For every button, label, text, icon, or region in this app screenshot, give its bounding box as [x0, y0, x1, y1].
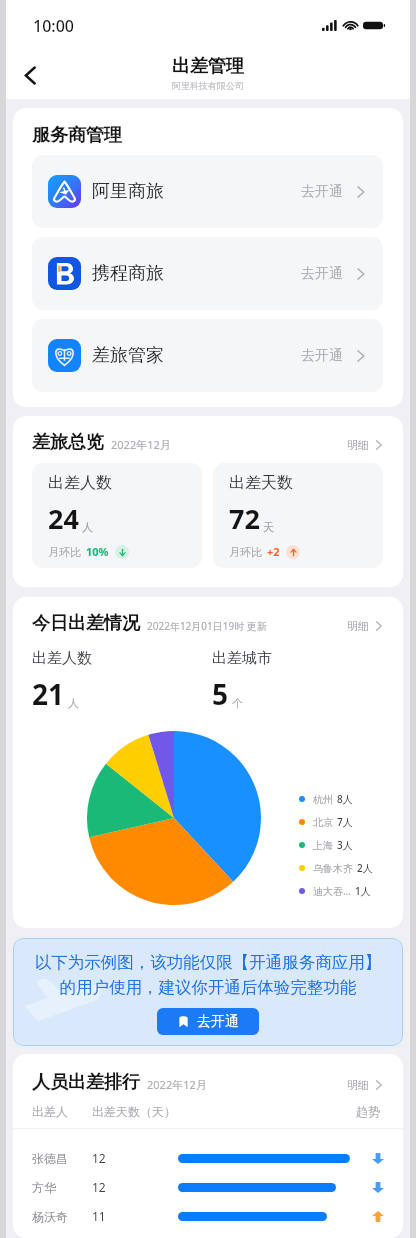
staticText: 2022年12月 — [111, 437, 171, 452]
staticText: 今日出差情况 — [32, 612, 140, 635]
staticText: 明细 — [347, 619, 369, 633]
staticText: 北京 — [313, 816, 333, 829]
staticText: 去开通 — [301, 183, 343, 201]
staticText: 阿里商旅 — [92, 180, 164, 203]
staticText: 去开通 — [197, 1013, 239, 1031]
staticText: 迪大吞… — [313, 884, 351, 898]
button[interactable]: 差旅管家 — [32, 319, 383, 392]
button[interactable]: 携程商旅 — [32, 237, 383, 310]
staticText: 张德昌 — [32, 1151, 92, 1166]
staticText: 12 — [92, 1179, 178, 1195]
staticText: 7人 — [337, 815, 353, 829]
staticText: 以下为示例图，该功能仅限【开通服务商应用】 — [13, 952, 403, 973]
staticText: 去开通 — [301, 347, 343, 365]
staticText: 杭州 — [313, 793, 333, 806]
staticText: 21 — [32, 675, 65, 713]
staticText: 人 — [82, 520, 93, 534]
staticText: 2人 — [357, 861, 373, 875]
button[interactable]: 阿里商旅 — [32, 155, 383, 228]
button[interactable]: 出差天数 — [213, 463, 383, 568]
staticText: 趋势 — [356, 1104, 380, 1119]
staticText: 2022年12月01日19时 更新 — [147, 619, 267, 633]
button[interactable]: 去开通 — [157, 1008, 259, 1035]
staticText: 5 — [212, 675, 229, 713]
staticText: 出差管理 — [172, 55, 244, 78]
button[interactable]: Back — [10, 55, 50, 95]
staticText: 服务商管理 — [32, 124, 122, 147]
button[interactable]: 杨沃奇 — [13, 1208, 403, 1224]
staticText: 阿里科技有限公司 — [172, 80, 244, 91]
staticText: 去开通 — [301, 265, 343, 283]
staticText: 出差天数 — [229, 473, 293, 493]
button[interactable]: 明细 — [347, 619, 384, 635]
staticText: 24 — [48, 500, 79, 537]
staticText: 12 — [92, 1150, 178, 1166]
button[interactable]: 张德昌 — [13, 1150, 403, 1166]
staticText: 个 — [232, 696, 243, 710]
staticText: 杨沃奇 — [32, 1209, 92, 1224]
button[interactable]: 方华 — [13, 1179, 403, 1195]
staticText: 月环比 — [48, 545, 81, 559]
staticText: 的用户使用，建议你开通后体验完整功能 — [13, 977, 403, 998]
button[interactable]: 明细 — [347, 438, 384, 454]
staticText: 携程商旅 — [92, 262, 164, 285]
staticText: 出差人数 — [48, 473, 112, 493]
staticText: 11 — [92, 1208, 178, 1224]
button[interactable]: 出差人数 — [32, 463, 202, 568]
staticText: 2022年12月 — [147, 1077, 207, 1092]
staticText: 10:00 — [33, 15, 74, 37]
staticText: 明细 — [347, 1078, 369, 1092]
staticText: 出差天数（天） — [92, 1104, 176, 1119]
staticText: 出差人数 — [32, 649, 92, 668]
staticText: 月环比 — [229, 545, 262, 559]
staticText: 差旅总览 — [32, 431, 104, 454]
staticText: 出差城市 — [212, 649, 272, 668]
staticText: 10% — [86, 544, 109, 559]
button[interactable]: 明细 — [347, 1078, 384, 1094]
staticText: 人 — [68, 696, 79, 710]
staticText: 天 — [263, 520, 274, 534]
staticText: 8人 — [337, 792, 353, 806]
staticText: 人员出差排行 — [32, 1071, 140, 1094]
staticText: 上海 — [313, 839, 333, 852]
staticText: 出差人 — [32, 1104, 92, 1119]
staticText: +2 — [267, 544, 280, 559]
staticText: 方华 — [32, 1180, 92, 1195]
staticText: 1人 — [355, 884, 371, 898]
staticText: 3人 — [337, 838, 353, 852]
staticText: 72 — [229, 500, 260, 537]
staticText: 明细 — [347, 438, 369, 452]
staticText: 差旅管家 — [92, 344, 164, 367]
staticText: 乌鲁木齐 — [313, 862, 353, 875]
